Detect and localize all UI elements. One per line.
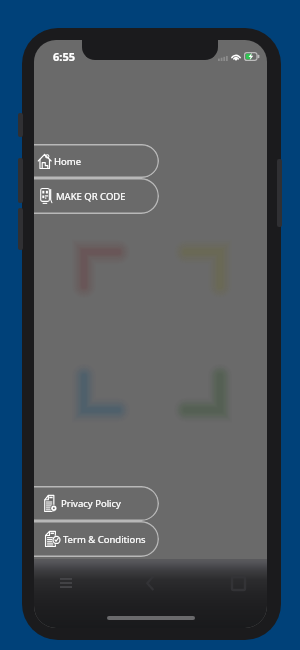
button[interactable]: MAKE QR CODE — [34, 178, 159, 214]
button[interactable]: Privacy Policy — [34, 486, 159, 521]
button[interactable]: Menu — [52, 572, 80, 594]
staticText: Home — [54, 155, 82, 168]
button[interactable]: Recents — [224, 571, 252, 595]
staticText: MAKE QR CODE — [56, 190, 126, 203]
staticText: Term & Conditions — [63, 533, 146, 546]
button[interactable]: Term & Conditions — [34, 521, 159, 557]
staticText: 6:55 — [53, 49, 75, 64]
button[interactable]: Home — [138, 571, 166, 595]
staticText: Privacy Policy — [61, 497, 121, 510]
button[interactable]: Home — [34, 144, 159, 178]
